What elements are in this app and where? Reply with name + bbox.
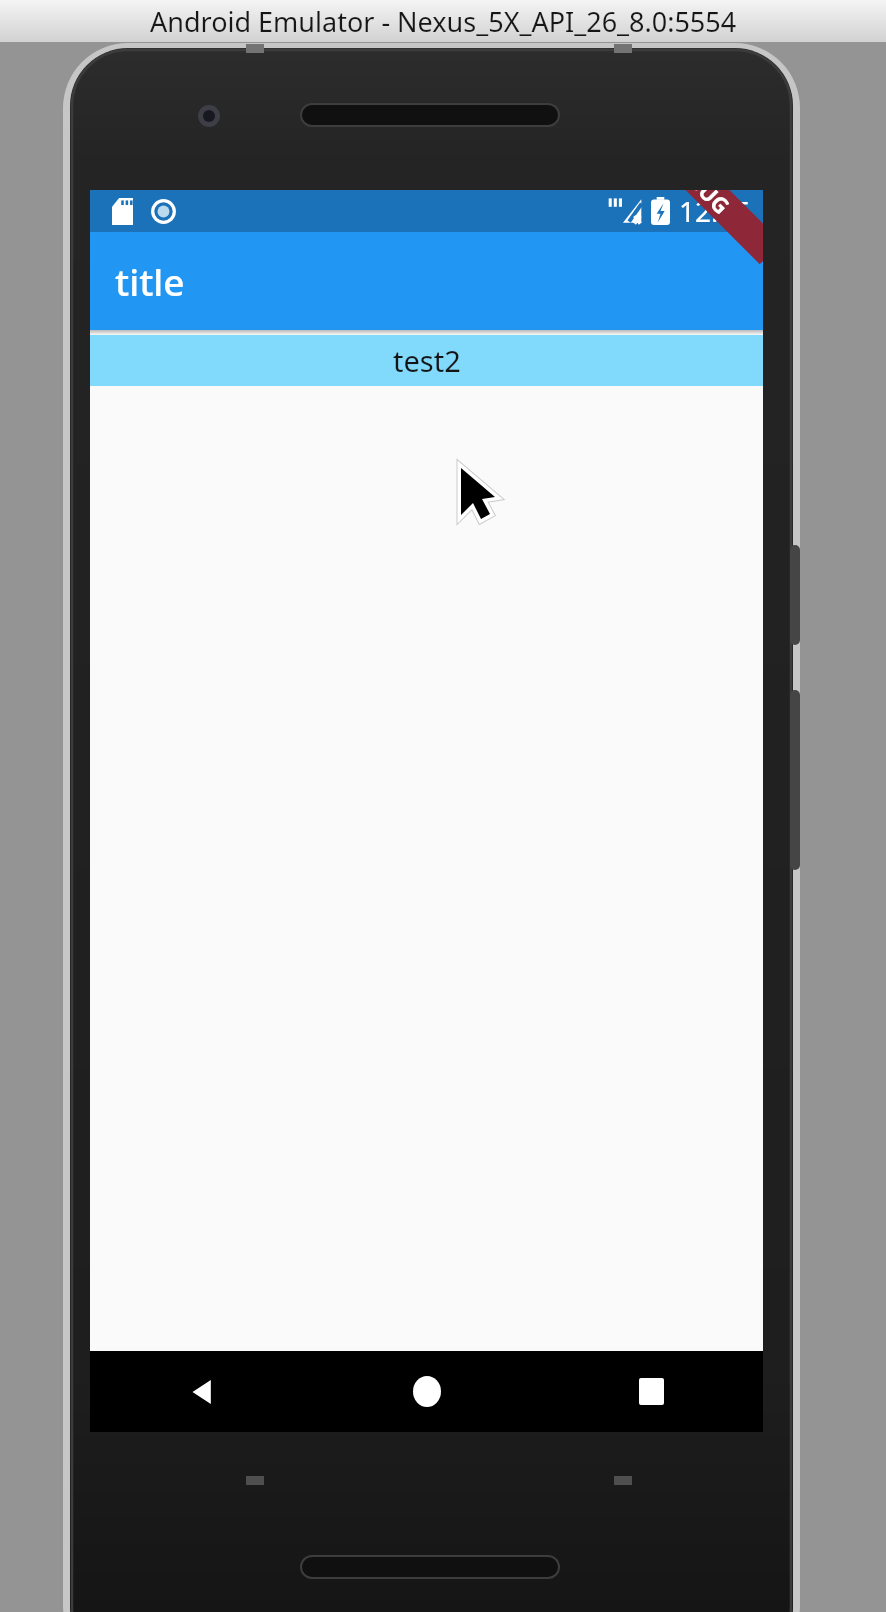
button[interactable]: Recent apps [539, 1351, 763, 1432]
staticText: title [115, 256, 185, 306]
staticText: Android Emulator - Nexus_5X_API_26_8.0:5… [150, 3, 737, 40]
staticText: 12:05 [679, 192, 751, 230]
button[interactable]: test2 [90, 335, 763, 386]
staticText: DEBUG [662, 190, 737, 220]
button[interactable]: Back [90, 1351, 315, 1432]
button[interactable]: Home [315, 1351, 539, 1432]
staticText: test2 [393, 341, 461, 380]
